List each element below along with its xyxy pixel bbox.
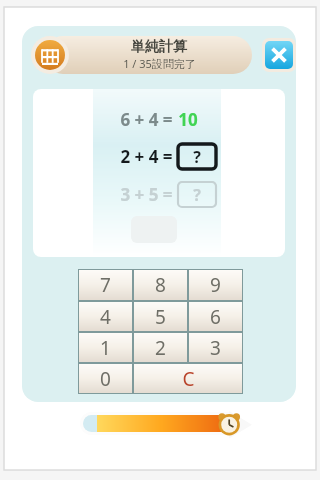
staticText: 2	[155, 335, 166, 361]
staticText: 7	[100, 272, 111, 298]
staticText: 0	[100, 366, 111, 392]
staticText: 1	[100, 335, 111, 361]
other: Timer	[214, 405, 252, 443]
staticText: 10	[178, 108, 198, 131]
staticText: 2 + 4 =	[120, 145, 173, 168]
button[interactable]: 9	[189, 270, 242, 300]
staticText: ?	[193, 184, 201, 206]
staticText: C	[182, 366, 195, 392]
button[interactable]: 0	[79, 364, 132, 393]
button[interactable]: 6	[189, 302, 242, 331]
staticText: 3	[210, 335, 221, 361]
staticText: ?	[193, 146, 201, 168]
button[interactable]: 7	[79, 270, 132, 300]
button[interactable]: 1	[79, 333, 132, 362]
staticText: 6 + 4 =	[120, 108, 173, 131]
button[interactable]: 2	[134, 333, 187, 362]
button[interactable]: C	[134, 364, 242, 393]
button[interactable]: Close	[262, 38, 296, 72]
staticText: 1 / 35設問完了	[123, 56, 196, 71]
button[interactable]: 8	[134, 270, 187, 300]
staticText: 8	[155, 272, 166, 298]
staticText: 4	[100, 304, 111, 330]
button[interactable]: 5	[134, 302, 187, 331]
staticText: 単純計算	[131, 38, 187, 56]
button[interactable]: Abacus	[30, 36, 70, 74]
staticText: 3 + 5 =	[120, 183, 173, 206]
button[interactable]: 4	[79, 302, 132, 331]
staticText: 6	[210, 304, 221, 330]
button[interactable]: 3	[189, 333, 242, 362]
staticText: 9	[210, 272, 221, 298]
staticText: 5	[155, 304, 166, 330]
